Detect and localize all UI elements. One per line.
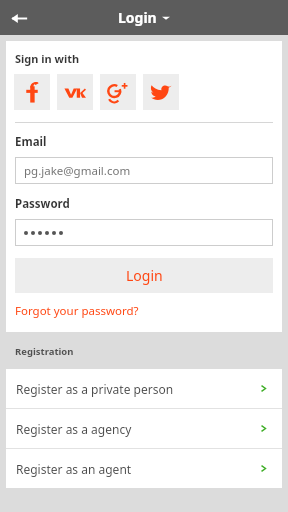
staticText: Register as a agency [16,421,132,437]
staticText: Forgot your password? [15,303,139,319]
button[interactable]: Login [15,258,273,293]
button[interactable]: pg.jake@gmail.com [15,157,273,184]
staticText: Register as an agent [16,461,132,477]
staticText: Email [15,134,47,150]
button[interactable]: Register as a agency [6,409,282,448]
staticText: Password [15,196,70,212]
button[interactable]: Register as a private person [6,369,282,408]
button[interactable]: Back [4,3,34,33]
staticText: pg.jake@gmail.com [24,163,131,179]
staticText: Sign in with [15,51,80,66]
button[interactable] [15,219,273,246]
staticText: Login [118,8,157,27]
button[interactable]: Sign in with Twitter [143,74,179,110]
staticText: Register as a private person [16,381,174,397]
staticText: Login [126,266,163,285]
button[interactable]: Sign in with Google Plus [100,74,136,110]
button[interactable]: Login [118,8,170,27]
button[interactable]: Sign in with VK [57,74,93,110]
button[interactable]: Register as an agent [6,449,282,488]
button[interactable]: Sign in with Facebook [14,74,50,110]
staticText: Registration [15,345,74,358]
button[interactable]: Forgot your password? [15,303,139,319]
